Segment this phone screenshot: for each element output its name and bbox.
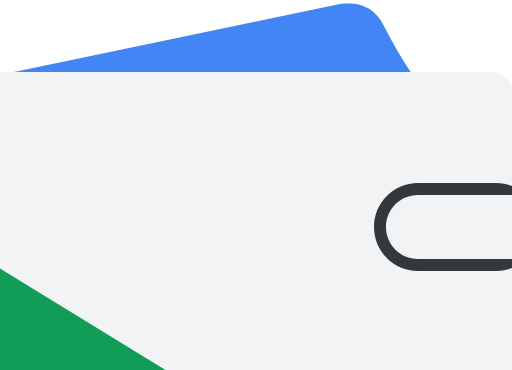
- button[interactable]: Wallet: [0, 0, 512, 370]
